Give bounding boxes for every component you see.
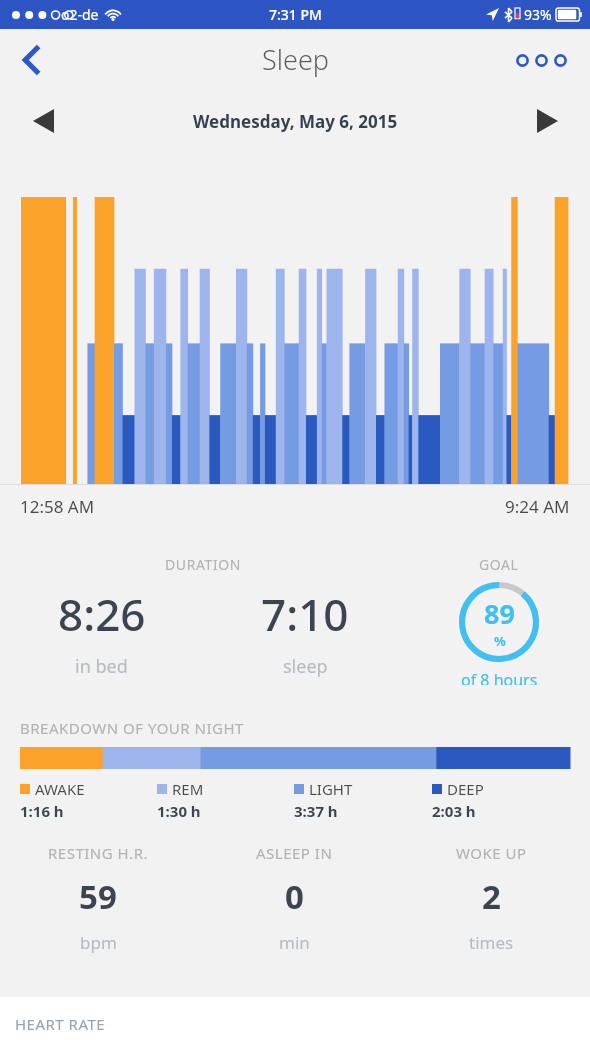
staticText: 2: [482, 874, 501, 919]
staticText: ASLEEP IN: [256, 843, 333, 863]
staticText: min: [279, 931, 310, 954]
staticText: 1:30 h: [157, 801, 201, 821]
staticText: LIGHT: [309, 779, 353, 799]
staticText: 12:58 AM: [20, 495, 95, 518]
staticText: times: [469, 931, 514, 954]
staticText: REM: [172, 779, 204, 799]
staticText: WOKE UP: [456, 843, 527, 863]
staticText: DEEP: [447, 779, 484, 799]
staticText: %: [494, 632, 506, 650]
staticText: 93%: [524, 5, 552, 24]
button[interactable]: HEART RATE: [0, 997, 590, 1049]
button[interactable]: Next day: [522, 96, 572, 146]
staticText: sleep: [283, 654, 328, 679]
staticText: 2:03 h: [432, 801, 476, 821]
staticText: 9:24 AM: [505, 495, 570, 518]
button[interactable]: Back: [0, 31, 62, 89]
staticText: BREAKDOWN OF YOUR NIGHT: [20, 718, 244, 738]
staticText: DURATION: [165, 555, 242, 574]
staticText: RESTING H.R.: [48, 843, 149, 863]
staticText: 7:31 PM: [269, 5, 322, 24]
staticText: AWAKE: [35, 779, 85, 799]
staticText: 8:26: [58, 584, 146, 644]
staticText: 7:10: [261, 584, 349, 644]
staticText: 3:37 h: [294, 801, 338, 821]
button[interactable]: Previous day: [18, 96, 68, 146]
button[interactable]: More options: [506, 35, 576, 85]
staticText: HEART RATE: [15, 1014, 106, 1034]
staticText: o2-de: [61, 5, 99, 24]
staticText: bpm: [80, 931, 117, 954]
staticText: 0: [285, 874, 304, 919]
staticText: in bed: [75, 654, 128, 679]
staticText: of 8 hours: [461, 669, 538, 685]
staticText: 89: [484, 595, 515, 632]
staticText: 1:16 h: [20, 801, 64, 821]
staticText: 59: [79, 874, 117, 919]
button[interactable]: GOAL: [458, 555, 540, 685]
staticText: Sleep: [262, 41, 329, 78]
staticText: Wednesday, May 6, 2015: [193, 110, 398, 133]
staticText: GOAL: [479, 555, 519, 574]
